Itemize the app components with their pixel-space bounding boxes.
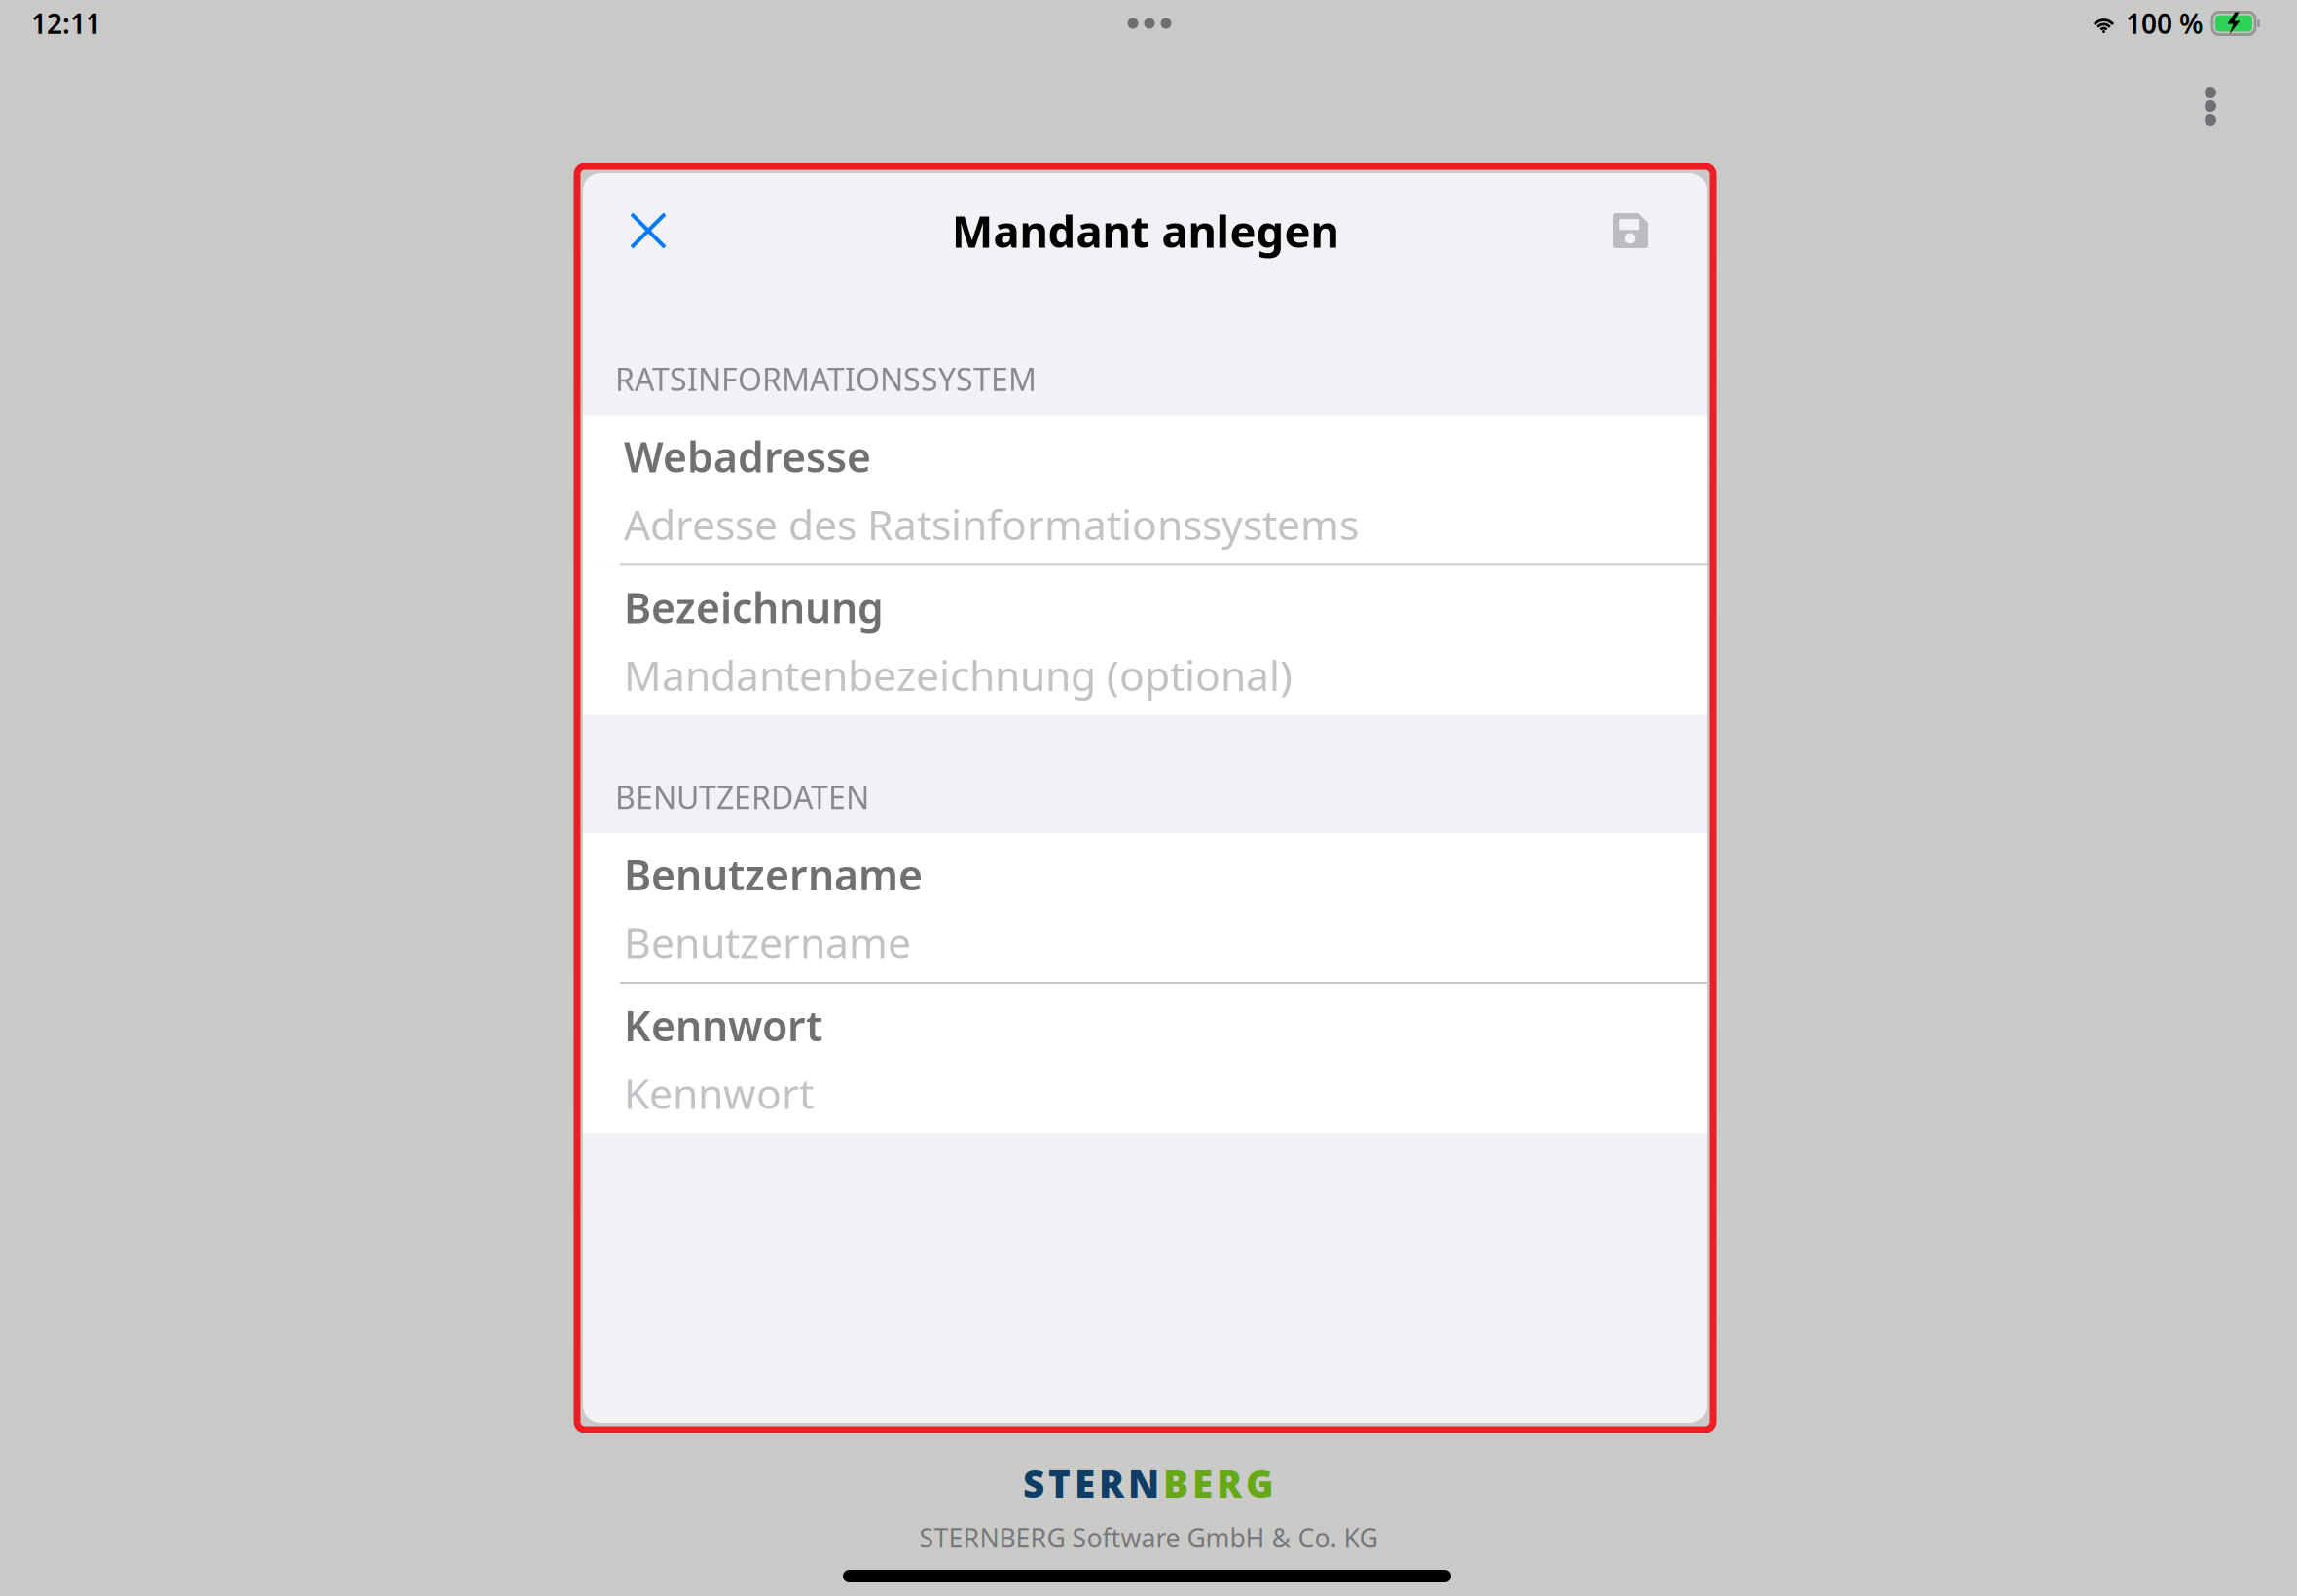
button[interactable]: Kennwort	[583, 984, 1707, 1133]
button[interactable]: Bezeichnung	[583, 566, 1707, 715]
staticText: R	[1099, 1458, 1124, 1508]
staticText: E	[1075, 1458, 1095, 1508]
staticText: 12:11	[31, 5, 101, 41]
button[interactable]: Weitere Optionen	[2181, 68, 2240, 144]
button[interactable]: Webadresse	[583, 415, 1707, 564]
staticText: BENUTZERDATEN	[615, 776, 869, 817]
staticText: Kennwort	[624, 997, 822, 1053]
staticText: Mandant anlegen	[951, 201, 1339, 260]
staticText: STERNBERG Software GmbH & Co. KG	[919, 1520, 1378, 1555]
staticText: Benutzername	[624, 847, 923, 902]
staticText: R	[1217, 1458, 1242, 1508]
staticText: E	[1192, 1458, 1213, 1508]
staticText: T	[1048, 1458, 1071, 1508]
staticText: N	[1128, 1458, 1159, 1508]
staticText: Kennwort	[624, 1065, 814, 1121]
staticText: Mandantenbezeichnung (optional)	[624, 647, 1293, 703]
button[interactable]: Speichern	[1591, 194, 1669, 268]
staticText: RATSINFORMATIONSSYSTEM	[615, 358, 1037, 399]
staticText: Adresse des Ratsinformationssystems	[624, 497, 1359, 552]
staticText: G	[1246, 1458, 1274, 1508]
staticText: Bezeichnung	[624, 580, 884, 635]
staticText: 100 %	[2126, 5, 2204, 41]
staticText: Benutzername	[624, 914, 911, 970]
staticText: S	[1023, 1458, 1044, 1508]
button[interactable]: Schließen	[609, 194, 687, 268]
staticText: Webadresse	[624, 429, 871, 484]
staticText: B	[1163, 1458, 1188, 1508]
button[interactable]: Benutzername	[583, 833, 1707, 982]
